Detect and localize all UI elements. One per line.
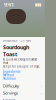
staticText: ▮▮▮ bbox=[35, 2, 41, 7]
staticText: Ingredients bbox=[3, 70, 20, 73]
staticText: › bbox=[41, 90, 42, 96]
button[interactable]: Servings bbox=[3, 89, 42, 96]
staticText: Difficulty bbox=[3, 83, 19, 89]
staticText: A quick weekday breakfast that bbox=[3, 58, 37, 65]
staticText: Sourdough Toast bbox=[3, 43, 29, 58]
button[interactable]: Difficulty bbox=[3, 82, 42, 89]
staticText: › bbox=[41, 83, 42, 89]
staticText: Method bbox=[3, 73, 14, 77]
staticText: BREAKFAST · 25 MIN bbox=[3, 39, 31, 42]
staticText: Nutrition bbox=[3, 77, 16, 80]
staticText: keeps for a couple of days. bbox=[3, 65, 40, 68]
staticText: 9:41 bbox=[4, 1, 14, 8]
button[interactable]: Source bbox=[3, 96, 42, 100]
staticText: Source bbox=[3, 97, 15, 100]
staticText: Servings bbox=[3, 90, 18, 96]
